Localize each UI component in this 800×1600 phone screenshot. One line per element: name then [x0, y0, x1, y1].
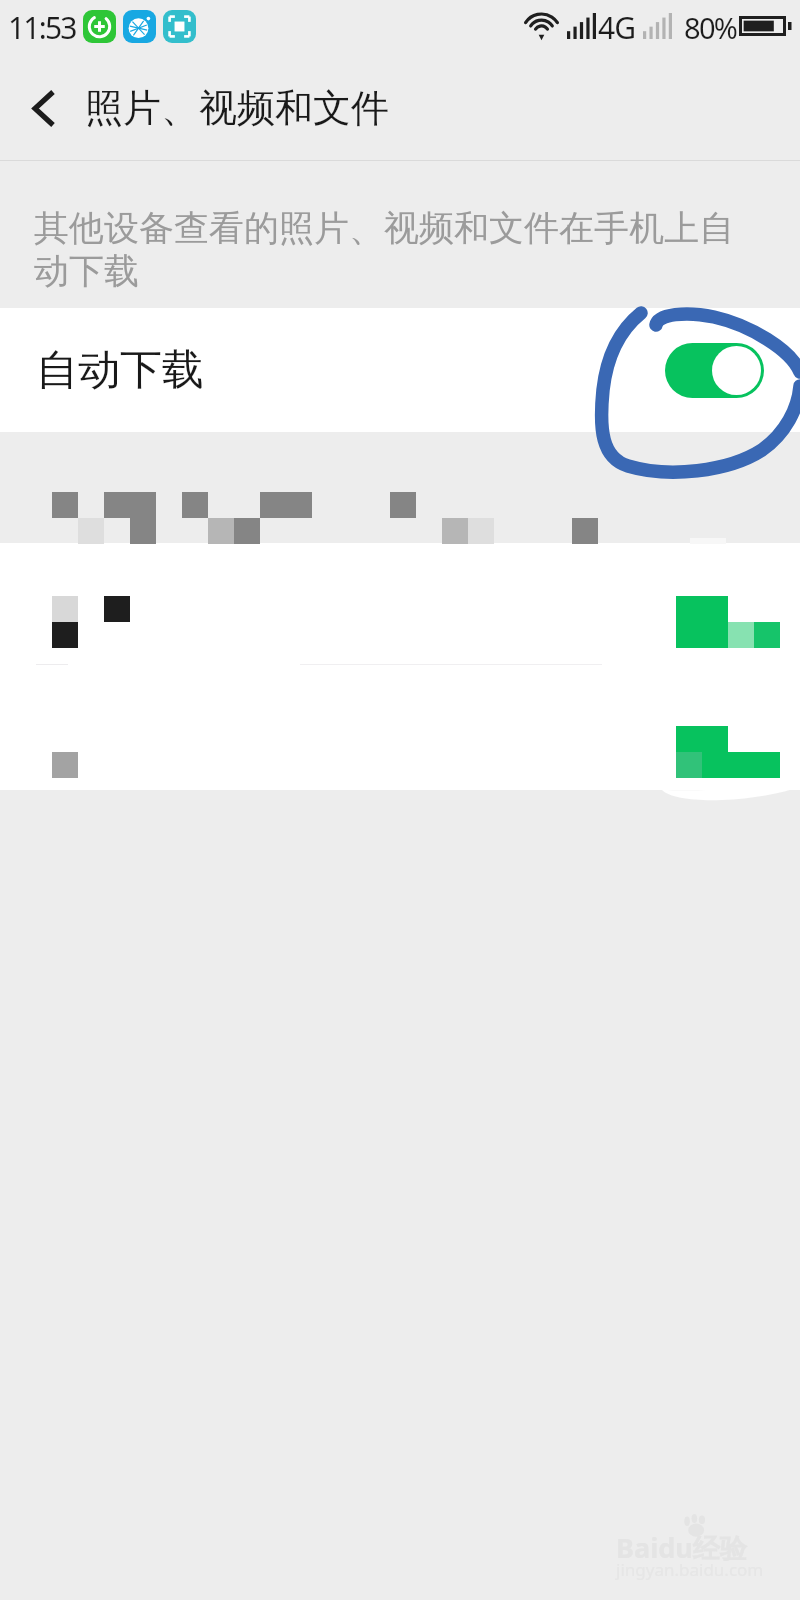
staticText: 80%	[684, 8, 737, 47]
staticText: 4G	[598, 7, 636, 48]
staticText: 其他设备查看的照片、视频和文件在手机上自动下载	[34, 206, 740, 294]
staticText: Baidu经验	[616, 1529, 747, 1566]
staticText: 自动下载	[36, 344, 204, 397]
staticText: 11:53	[8, 7, 76, 48]
button[interactable]: Back	[0, 56, 88, 160]
button[interactable]: Auto download toggle	[665, 343, 764, 398]
staticText: 照片、视频和文件	[85, 84, 389, 132]
button[interactable]: 自动下载	[0, 308, 800, 432]
